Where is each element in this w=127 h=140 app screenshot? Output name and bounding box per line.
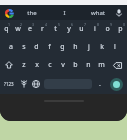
button[interactable]: what (81, 5, 114, 20)
button[interactable]: p (114, 20, 127, 38)
button[interactable]: u (75, 20, 88, 38)
button[interactable]: Emoji (18, 74, 30, 94)
staticText: b (73, 60, 78, 70)
button[interactable]: l (108, 38, 121, 56)
staticText: f (48, 42, 51, 52)
button[interactable]: the (15, 5, 48, 20)
staticText: y (67, 24, 71, 34)
button[interactable]: f (43, 38, 56, 56)
button[interactable]: z (18, 56, 30, 74)
staticText: t (54, 24, 57, 34)
staticText: h (73, 42, 78, 52)
staticText: 0 (123, 22, 126, 27)
staticText: ?123 (4, 81, 14, 87)
staticText: 3 (32, 22, 35, 27)
staticText: 4 (45, 22, 48, 27)
button[interactable]: Change language (30, 74, 42, 94)
button[interactable]: s (17, 38, 30, 56)
staticText: e (28, 24, 32, 34)
staticText: a (9, 42, 13, 52)
staticText: s (22, 42, 26, 52)
staticText: d (34, 42, 39, 52)
staticText: 8 (97, 22, 100, 27)
staticText: g (60, 42, 65, 52)
button[interactable]: . (94, 74, 105, 94)
staticText: u (79, 24, 84, 34)
staticText: k (100, 42, 104, 52)
button[interactable]: g (56, 38, 69, 56)
button[interactable]: Voice input (113, 7, 125, 19)
button[interactable]: y (62, 20, 75, 38)
button[interactable]: m (95, 56, 108, 74)
button[interactable]: a (5, 38, 17, 56)
button[interactable]: b (69, 56, 82, 74)
button[interactable]: I (48, 5, 81, 20)
button[interactable]: Google search (3, 7, 15, 19)
staticText: the (27, 9, 37, 17)
button[interactable]: n (82, 56, 95, 74)
button[interactable]: i (88, 20, 101, 38)
staticText: what (91, 9, 105, 17)
button[interactable]: q (0, 20, 12, 38)
staticText: l (114, 42, 116, 52)
staticText: r (41, 24, 44, 34)
button[interactable]: Backspace (108, 56, 127, 74)
button[interactable]: j (82, 38, 95, 56)
button[interactable]: h (69, 38, 82, 56)
staticText: 5 (58, 22, 61, 27)
staticText: . (99, 79, 101, 89)
staticText: 1 (8, 22, 11, 27)
staticText: v (61, 60, 65, 70)
staticText: I (63, 9, 66, 17)
button[interactable]: o (101, 20, 114, 38)
staticText: o (105, 24, 110, 34)
staticText: q (4, 24, 9, 34)
staticText: 7 (84, 22, 87, 27)
button[interactable]: r (36, 20, 49, 38)
button[interactable]: d (30, 38, 43, 56)
staticText: m (98, 60, 105, 70)
button[interactable]: t (49, 20, 62, 38)
button[interactable]: c (43, 56, 56, 74)
button[interactable]: k (95, 38, 108, 56)
staticText: n (86, 60, 91, 70)
staticText: w (15, 24, 21, 34)
staticText: j (88, 42, 90, 52)
button[interactable]: ?123 (0, 74, 18, 94)
staticText: x (35, 60, 39, 70)
staticText: p (118, 24, 123, 34)
staticText: 6 (71, 22, 74, 27)
button[interactable]: v (56, 56, 69, 74)
staticText: c (48, 60, 52, 70)
staticText: z (22, 60, 26, 70)
staticText: 2 (20, 22, 23, 27)
button[interactable]: w (12, 20, 24, 38)
staticText: 9 (110, 22, 113, 27)
button[interactable]: e (24, 20, 36, 38)
button[interactable]: Enter (110, 78, 123, 91)
staticText: i (94, 24, 96, 34)
button[interactable]: x (30, 56, 43, 74)
button[interactable]: Shift (0, 56, 18, 74)
